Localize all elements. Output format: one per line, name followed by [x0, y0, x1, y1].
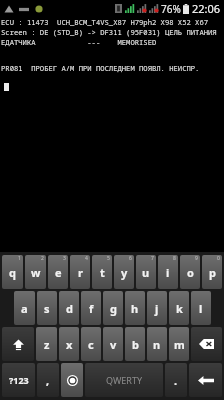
staticText: . [174, 373, 178, 388]
button[interactable]: Change keyboard language [61, 363, 83, 397]
staticText: j [155, 301, 159, 316]
button[interactable]: , [37, 363, 59, 397]
button[interactable]: . [165, 363, 187, 397]
button[interactable]: s [37, 291, 57, 325]
button[interactable]: e [48, 255, 68, 289]
staticText: c [88, 337, 94, 352]
button[interactable]: t [92, 255, 112, 289]
staticText: s [44, 301, 50, 316]
staticText: l [199, 301, 203, 316]
button[interactable]: j [147, 291, 167, 325]
staticText: Screen : DE (STD_B) -> DF311 (95F031) ЦЕ… [1, 27, 224, 37]
staticText: ЕДАТЧИКА --- MEMORISED [1, 37, 157, 47]
staticText: 1 [18, 255, 21, 262]
button[interactable]: Enter [189, 363, 222, 397]
button[interactable]: d [59, 291, 79, 325]
staticText: PR081 ПРОБЕГ А/М ПРИ ПОСЛЕДНЕМ ПОЯВЛ. НЕ… [1, 63, 224, 73]
button[interactable]: y [114, 255, 134, 289]
button[interactable]: QWERTY [85, 363, 163, 397]
staticText: w [31, 265, 41, 280]
button[interactable]: w [25, 255, 46, 289]
button[interactable]: ?123 [2, 363, 35, 397]
staticText: h [131, 301, 139, 316]
staticText: m [174, 337, 185, 352]
button[interactable]: x [59, 327, 79, 361]
button[interactable]: n [147, 327, 167, 361]
staticText: 7 [151, 255, 154, 262]
button[interactable]: Backspace [191, 327, 222, 361]
staticText: p [209, 265, 216, 280]
staticText: e [55, 265, 62, 280]
staticText: v [110, 337, 117, 352]
button[interactable]: l [191, 291, 211, 325]
staticText: QWERTY [106, 374, 143, 386]
staticText: 2 [41, 255, 44, 262]
staticText: z [44, 337, 50, 352]
staticText: t [100, 265, 105, 280]
staticText: 76% [161, 2, 181, 16]
staticText: a [21, 301, 28, 316]
staticText: n [153, 337, 161, 352]
button[interactable]: r [70, 255, 90, 289]
staticText: , [46, 373, 50, 388]
button[interactable]: v [103, 327, 123, 361]
staticText: 9 [195, 255, 198, 262]
staticText: g [110, 301, 117, 316]
button[interactable]: z [36, 327, 57, 361]
button[interactable]: a [14, 291, 35, 325]
staticText: 22:06 [192, 1, 221, 16]
staticText: x [66, 337, 73, 352]
staticText: 4 [85, 255, 88, 262]
staticText: y [121, 265, 128, 280]
staticText: u [142, 265, 150, 280]
staticText: r [78, 265, 83, 280]
staticText: k [176, 301, 183, 316]
staticText: d [66, 301, 73, 316]
staticText: 5 [107, 255, 110, 262]
staticText: 3 [63, 255, 66, 262]
staticText: q [9, 265, 16, 280]
staticText: 6 [129, 255, 132, 262]
button[interactable]: u [136, 255, 156, 289]
staticText: 8 [173, 255, 176, 262]
button[interactable]: g [103, 291, 123, 325]
staticText: b [132, 337, 139, 352]
staticText: f [89, 301, 94, 316]
button[interactable]: Shift [2, 327, 34, 361]
button[interactable]: o [180, 255, 200, 289]
button[interactable]: h [125, 291, 145, 325]
staticText: o [187, 265, 194, 280]
button[interactable]: b [125, 327, 145, 361]
button[interactable]: q [2, 255, 23, 289]
button[interactable]: f [81, 291, 101, 325]
staticText: 0 [217, 255, 220, 262]
button[interactable]: k [169, 291, 189, 325]
button[interactable]: p [202, 255, 222, 289]
button[interactable]: i [158, 255, 178, 289]
staticText: i [166, 265, 170, 280]
staticText: ?123 [9, 374, 29, 386]
staticText: ECU : 11473 UCH_BCM_T4VS_X87 H79ph2 X98 … [1, 17, 224, 27]
button[interactable]: c [81, 327, 101, 361]
button[interactable]: m [169, 327, 189, 361]
